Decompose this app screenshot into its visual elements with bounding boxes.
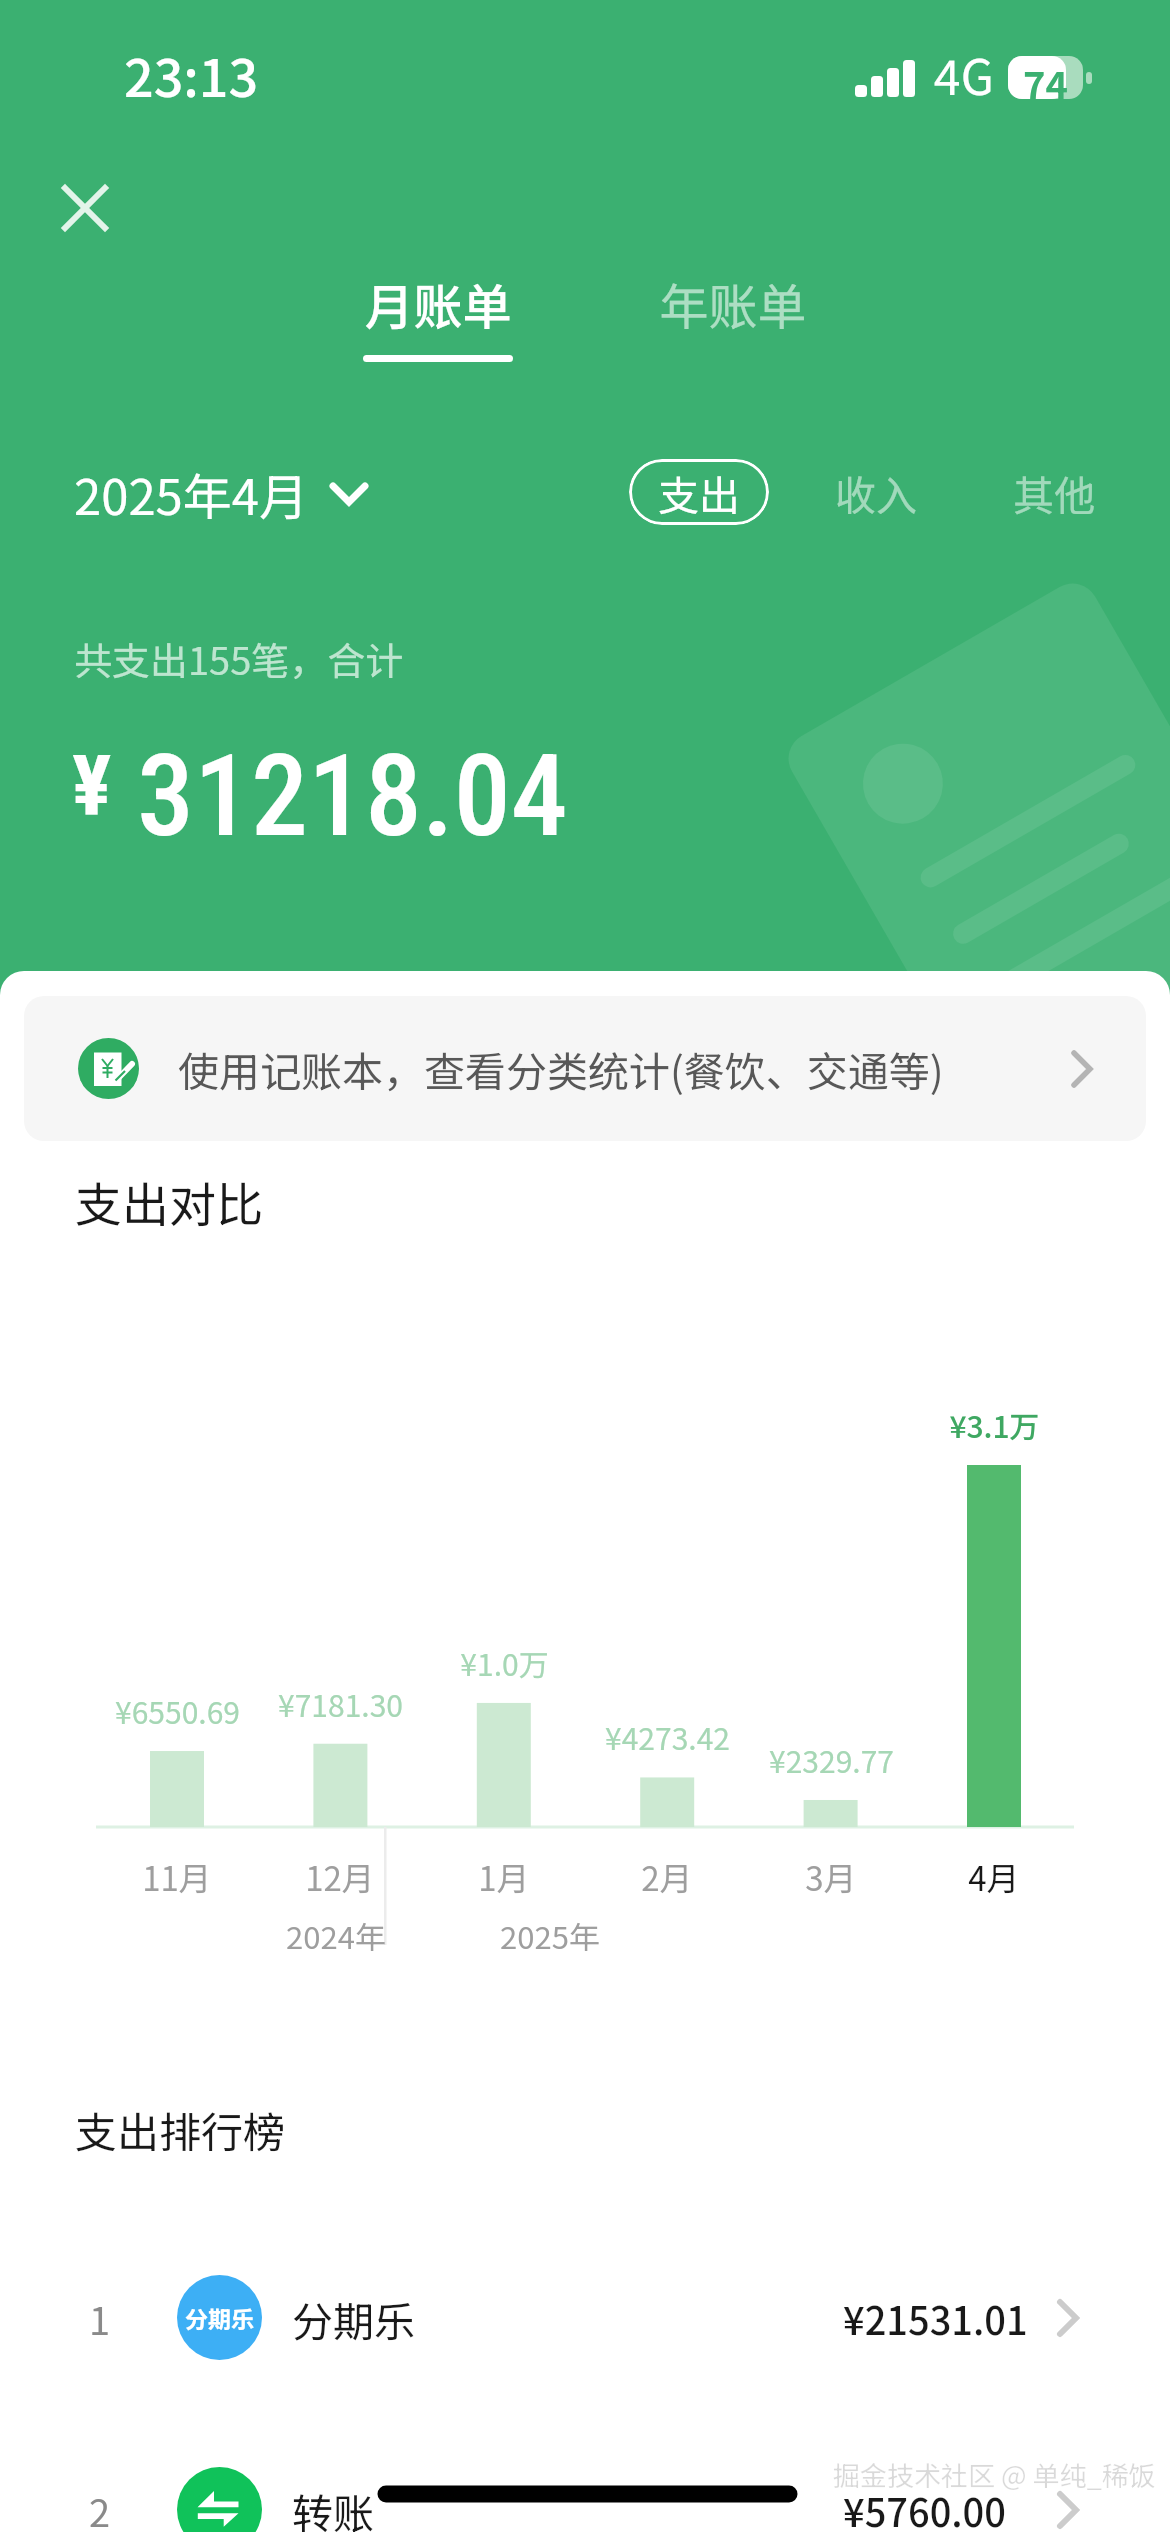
staticText: 4月 — [968, 1853, 1020, 1901]
button[interactable]: 支出 — [629, 459, 769, 525]
staticText: ¥6550.69 — [115, 1689, 240, 1732]
button[interactable]: 1 — [0, 2253, 1170, 2383]
button[interactable]: 月账单 — [339, 268, 537, 362]
staticText: 共支出155笔，合计 — [74, 631, 404, 686]
staticText: 支出排行榜 — [75, 2099, 286, 2160]
staticText: ¥7181.30 — [278, 1682, 403, 1725]
button[interactable]: 2 — [0, 2445, 1170, 2532]
staticText: 4G — [934, 39, 994, 109]
staticText: 1月 — [478, 1853, 530, 1901]
staticText: 收入 — [835, 463, 917, 522]
staticText: 31218.04 — [137, 729, 568, 863]
staticText: 74 — [1023, 56, 1068, 111]
button[interactable]: 年账单 — [634, 268, 832, 348]
staticText: 2024年 — [286, 1913, 386, 1958]
staticText: ¥2329.77 — [769, 1738, 894, 1781]
button[interactable]: 使用记账本，查看分类统计(餐饮、交通等) — [24, 996, 1146, 1141]
staticText: 使用记账本，查看分类统计(餐饮、交通等) — [178, 1039, 944, 1098]
staticText: 转账 — [292, 2481, 374, 2532]
button[interactable]: 收入 — [819, 459, 933, 525]
button[interactable]: Close — [40, 162, 128, 250]
staticText: ¥5760.00 — [843, 2483, 1006, 2532]
staticText: 分期乐 — [292, 2289, 415, 2348]
button[interactable]: 其他 — [997, 459, 1111, 525]
staticText: 分期乐 — [185, 2301, 254, 2334]
staticText: 1 — [89, 2291, 111, 2346]
staticText: 12月 — [305, 1853, 375, 1901]
staticText: 支出 — [658, 463, 740, 522]
staticText: 2025年4月 — [74, 458, 308, 529]
staticText: ¥1.0万 — [460, 1641, 549, 1684]
staticText: ¥ — [72, 737, 112, 834]
staticText: 月账单 — [364, 268, 512, 339]
staticText: 支出对比 — [75, 1167, 263, 1235]
staticText: 2025年 — [500, 1913, 600, 1958]
staticText: 11月 — [142, 1853, 212, 1901]
staticText: 23:13 — [124, 37, 259, 112]
staticText: ¥21531.01 — [843, 2291, 1028, 2346]
staticText: ¥3.1万 — [949, 1403, 1040, 1446]
button[interactable]: 2025年4月 — [74, 457, 372, 529]
staticText: 其他 — [1013, 463, 1095, 522]
staticText: 年账单 — [659, 268, 807, 339]
staticText: ¥4273.42 — [605, 1715, 730, 1758]
staticText: 3月 — [805, 1853, 857, 1901]
staticText: 2 — [89, 2483, 111, 2532]
staticText: 2月 — [641, 1853, 693, 1901]
staticText: 掘金技术社区 @ 单纯_稀饭 — [833, 2455, 1156, 2494]
